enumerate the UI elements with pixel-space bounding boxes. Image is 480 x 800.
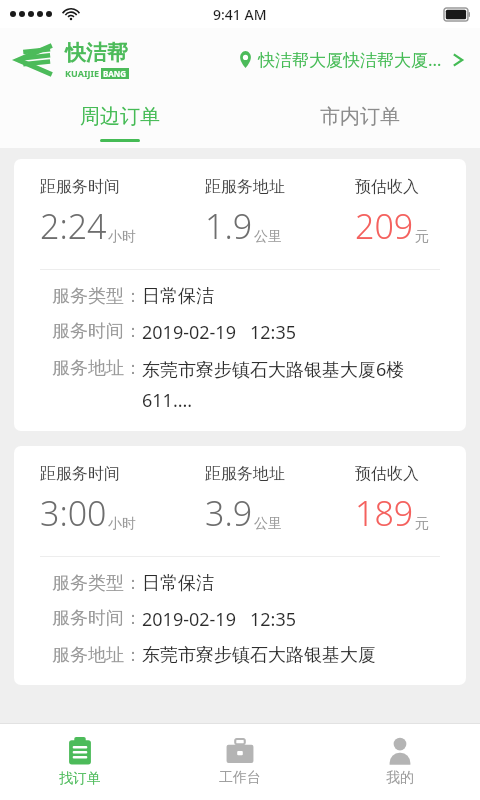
staticText: 找订单 (59, 770, 101, 788)
staticText: 距服务时间 (40, 464, 120, 484)
staticText: 东莞市寮步镇石大路银基大厦 (142, 644, 376, 667)
staticText: 189 (355, 490, 414, 536)
staticText: 9:41 AM (213, 5, 267, 24)
staticText: 距服务地址 (205, 177, 285, 197)
staticText: 元 (415, 515, 429, 533)
button[interactable]: 找订单 (0, 724, 160, 800)
button[interactable]: 距服务时间 (14, 159, 466, 431)
staticText: BANG (103, 68, 127, 79)
staticText: 服务时间： (52, 320, 142, 343)
staticText: KUAIJIE (65, 67, 99, 79)
button[interactable]: 距服务时间 (14, 446, 466, 685)
staticText: 服务类型： (52, 572, 142, 595)
staticText: 公里 (254, 228, 282, 246)
staticText: 小时 (108, 515, 136, 533)
staticText: 公里 (254, 515, 282, 533)
staticText: 3:00 (40, 490, 107, 536)
staticText: 1.9 (205, 203, 253, 249)
staticText: 服务时间： (52, 607, 142, 630)
staticText: 2019-02-19 12:35 (142, 320, 297, 345)
button[interactable]: 快洁帮大厦快洁帮大厦… (237, 40, 466, 79)
staticText: 2019-02-19 12:35 (142, 607, 297, 632)
button[interactable]: 我的 (320, 724, 480, 800)
staticText: 服务地址： (52, 357, 142, 380)
staticText: 元 (415, 228, 429, 246)
staticText: 快洁帮 (65, 40, 128, 66)
staticText: 3.9 (205, 490, 253, 536)
staticText: 市内订单 (320, 104, 400, 129)
staticText: 工作台 (219, 769, 261, 787)
staticText: 距服务地址 (205, 464, 285, 484)
button[interactable]: 工作台 (160, 724, 320, 800)
staticText: 东莞市寮步镇石大路银基大厦6楼 (142, 357, 405, 382)
staticText: 距服务时间 (40, 177, 120, 197)
staticText: 2:24 (40, 203, 107, 249)
staticText: 快洁帮大厦快洁帮大厦… (258, 48, 442, 71)
staticText: 周边订单 (80, 104, 160, 129)
staticText: 服务类型： (52, 285, 142, 308)
staticText: 预估收入 (355, 464, 419, 484)
button[interactable]: 市内订单 (240, 91, 480, 148)
button[interactable]: 周边订单 (0, 91, 240, 148)
staticText: 预估收入 (355, 177, 419, 197)
staticText: 我的 (386, 769, 414, 787)
staticText: 服务地址： (52, 644, 142, 667)
staticText: 日常保洁 (142, 572, 214, 595)
staticText: 209 (355, 203, 414, 249)
staticText: 小时 (108, 228, 136, 246)
staticText: 611.... (142, 388, 193, 413)
staticText: 日常保洁 (142, 285, 214, 308)
